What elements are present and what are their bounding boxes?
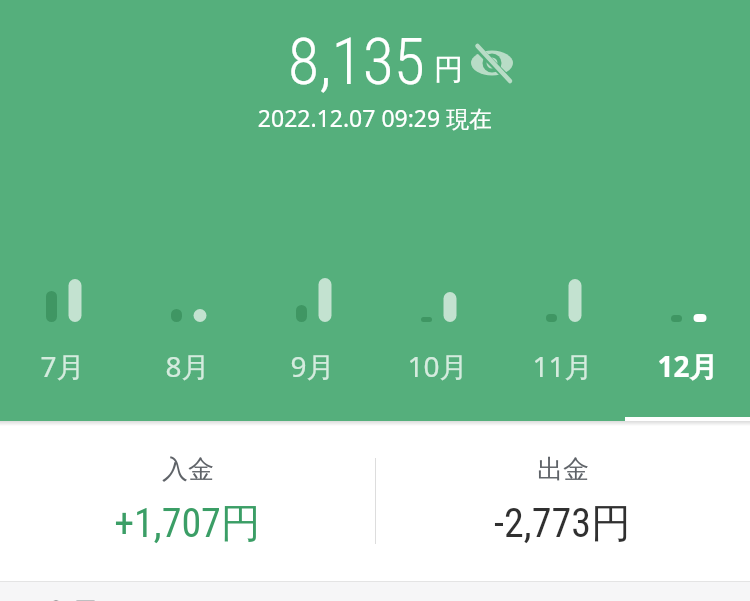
button[interactable]: 11月: [500, 342, 625, 390]
button[interactable]: 8月: [125, 342, 250, 390]
staticText: +1,707円: [114, 498, 261, 548]
staticText: 出金: [537, 453, 589, 486]
button[interactable]: [471, 46, 513, 80]
staticText: 11月: [532, 347, 593, 385]
staticText: -2,773円: [494, 498, 631, 548]
staticText: 9月: [290, 347, 335, 385]
button[interactable]: 出金: [375, 421, 750, 581]
staticText: 入金: [162, 453, 214, 486]
staticText: 10月: [407, 347, 468, 385]
button[interactable]: 9月: [250, 342, 375, 390]
staticText: 7月: [40, 347, 85, 385]
button[interactable]: 12月: [625, 342, 750, 390]
button[interactable]: 7月: [0, 342, 125, 390]
staticText: 2022.12.07 09:29 現在: [0, 102, 750, 133]
staticText: 8,135: [288, 25, 425, 100]
staticText: 8月: [165, 347, 210, 385]
staticText: 12月: [657, 347, 718, 385]
button[interactable]: 10月: [375, 342, 500, 390]
button[interactable]: 入金: [0, 421, 375, 581]
staticText: 円: [434, 51, 463, 88]
